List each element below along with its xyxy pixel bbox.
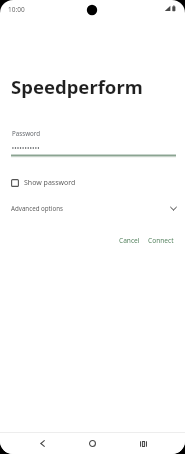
button[interactable]: Show password bbox=[8, 176, 80, 190]
staticText: Speedperform bbox=[11, 74, 143, 99]
button[interactable]: Connect bbox=[144, 233, 178, 248]
staticText: Show password bbox=[24, 178, 76, 188]
staticText: 10:00 bbox=[8, 5, 25, 14]
staticText: Password bbox=[12, 129, 40, 137]
button[interactable]: Recent apps bbox=[131, 433, 155, 454]
staticText: Advanced options bbox=[11, 204, 63, 212]
button[interactable]: Back bbox=[30, 433, 54, 454]
button[interactable]: Home bbox=[80, 433, 104, 454]
button[interactable]: Advanced options bbox=[0, 202, 185, 214]
staticText: Connect bbox=[148, 236, 174, 245]
button[interactable]: Cancel bbox=[113, 233, 144, 248]
staticText: Cancel bbox=[119, 236, 140, 245]
